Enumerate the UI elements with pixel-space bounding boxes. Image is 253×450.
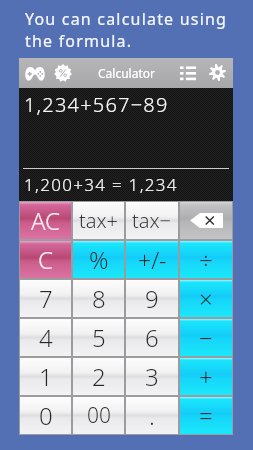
staticText: Calculator (98, 65, 155, 81)
button[interactable]: 9 (126, 280, 178, 317)
button[interactable]: Settings (205, 60, 229, 84)
button[interactable]: 3 (126, 358, 178, 395)
staticText: % (89, 243, 109, 276)
button[interactable]: 5 (73, 319, 124, 356)
staticText: tax+ (79, 207, 119, 234)
button[interactable]: History (176, 60, 200, 84)
staticText: ÷ (199, 243, 213, 276)
staticText: × (199, 282, 213, 315)
staticText: +/- (138, 244, 167, 275)
staticText: the formula. (25, 30, 133, 52)
button[interactable]: +/- (126, 241, 178, 278)
staticText: 6 (145, 321, 159, 354)
staticText: 7 (39, 282, 53, 315)
staticText: 1,234+567−89 (24, 91, 169, 118)
button[interactable]: − (180, 319, 232, 356)
staticText: 4 (39, 321, 53, 354)
button[interactable]: 0 (20, 397, 71, 434)
button[interactable]: 6 (126, 319, 178, 356)
button[interactable]: Tax rate (51, 61, 75, 85)
button[interactable]: tax+ (73, 202, 124, 239)
button[interactable]: AC (20, 202, 71, 239)
staticText: 5 (92, 321, 106, 354)
staticText: 2 (92, 360, 106, 393)
button[interactable]: 2 (73, 358, 124, 395)
button[interactable]: tax− (126, 202, 178, 239)
staticText: 1,200+34 = 1,234 (24, 173, 178, 196)
staticText: C (38, 243, 53, 276)
staticText: 3 (145, 360, 159, 393)
button[interactable]: 00 (73, 397, 124, 434)
button[interactable]: C (20, 241, 71, 278)
button[interactable]: . (126, 397, 178, 434)
staticText: + (199, 360, 213, 393)
button[interactable]: ÷ (180, 241, 232, 278)
staticText: 9 (145, 282, 159, 315)
button[interactable] (180, 202, 232, 239)
button[interactable]: 8 (73, 280, 124, 317)
button[interactable]: 7 (20, 280, 71, 317)
staticText: − (199, 321, 213, 354)
staticText: tax− (132, 207, 172, 234)
button[interactable]: Games (23, 61, 47, 85)
button[interactable]: 4 (20, 319, 71, 356)
staticText: 8 (92, 282, 106, 315)
button[interactable]: = (180, 397, 232, 434)
staticText: 0 (39, 399, 53, 432)
button[interactable]: × (180, 280, 232, 317)
button[interactable]: 1 (20, 358, 71, 395)
staticText: You can calculate using (25, 8, 228, 30)
button[interactable]: + (180, 358, 232, 395)
staticText: = (199, 399, 213, 432)
staticText: AC (31, 204, 61, 237)
staticText: 00 (87, 401, 111, 430)
staticText: 1 (39, 360, 53, 393)
button[interactable]: % (73, 241, 124, 278)
staticText: . (149, 399, 155, 432)
